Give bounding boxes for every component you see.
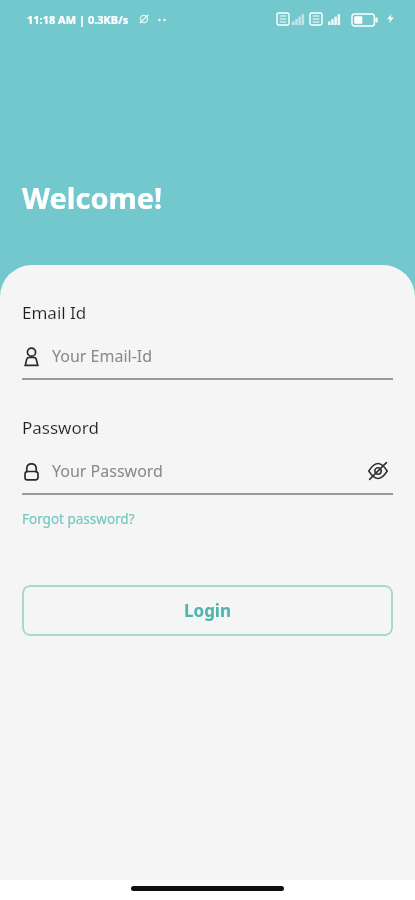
staticText: Login bbox=[184, 599, 232, 622]
staticText: Password bbox=[22, 416, 99, 439]
staticText: Email Id bbox=[22, 301, 87, 324]
button[interactable]: Forgot password? bbox=[22, 510, 135, 528]
staticText: Welcome! bbox=[22, 178, 163, 217]
staticText: Your Email-Id bbox=[52, 345, 153, 367]
button[interactable]: Show password bbox=[363, 456, 393, 486]
staticText: Forgot password? bbox=[22, 510, 135, 528]
button[interactable]: Login bbox=[22, 585, 393, 636]
staticText: Your Password bbox=[52, 460, 163, 482]
staticText: 11:18 AM | 0.3KB/s bbox=[27, 12, 129, 27]
button[interactable]: Your Email-Id bbox=[22, 341, 393, 371]
button[interactable]: Your Password bbox=[22, 456, 363, 486]
